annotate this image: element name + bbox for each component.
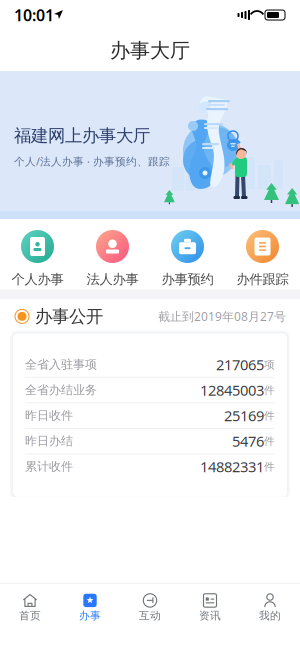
button[interactable]: 办事预约 <box>150 230 225 287</box>
button[interactable]: 法人办事 <box>75 230 150 287</box>
staticText: 昨日办结 <box>25 434 73 448</box>
button[interactable]: 资讯 <box>180 583 240 625</box>
staticText: 昨日收件 <box>25 408 73 423</box>
staticText: 个人/法人办事 · 办事预约、跟踪 <box>14 154 170 168</box>
staticText: 福建网上办事大厅 <box>14 125 150 146</box>
staticText: 个人办事 <box>11 271 63 287</box>
staticText: 全省入驻事项 <box>25 357 97 372</box>
staticText: 10:01 <box>14 4 54 26</box>
staticText: 25169 <box>224 406 264 425</box>
staticText: 办事 <box>79 609 101 622</box>
button[interactable]: 个人办事 <box>0 230 75 287</box>
button[interactable]: 办事 <box>60 583 120 625</box>
button[interactable]: 首页 <box>0 583 60 625</box>
staticText: 5476 <box>232 431 264 451</box>
staticText: 办件跟踪 <box>236 271 288 287</box>
staticText: 件 <box>264 435 275 448</box>
staticText: 我的 <box>259 609 281 622</box>
staticText: 项 <box>264 358 275 371</box>
staticText: 14882331 <box>200 457 264 476</box>
staticText: 件 <box>264 460 275 473</box>
button[interactable]: 互动 <box>120 583 180 625</box>
staticText: 资讯 <box>199 609 221 622</box>
staticText: 件 <box>264 384 275 397</box>
staticText: 办事公开 <box>35 306 103 327</box>
staticText: 首页 <box>19 609 41 622</box>
staticText: 累计收件 <box>25 459 73 474</box>
staticText: 办事预约 <box>161 271 213 287</box>
staticText: 办事大厅 <box>110 38 190 63</box>
button[interactable]: 办件跟踪 <box>225 230 300 287</box>
staticText: 互动 <box>139 609 161 622</box>
button[interactable]: 我的 <box>240 583 300 625</box>
staticText: 全省办结业务 <box>25 383 97 397</box>
staticText: 截止到2019年08月27号 <box>158 308 286 324</box>
staticText: 法人办事 <box>86 271 138 287</box>
staticText: 217065 <box>216 355 264 374</box>
staticText: 12845003 <box>200 380 264 400</box>
staticText: 件 <box>264 409 275 422</box>
